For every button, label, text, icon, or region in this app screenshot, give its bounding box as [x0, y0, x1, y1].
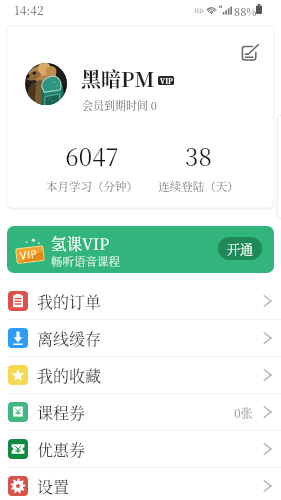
staticText: 14:42 — [14, 1, 44, 18]
button[interactable]: 优惠券 — [0, 431, 281, 467]
staticText: 连续登陆（天） — [158, 178, 239, 195]
button[interactable]: 开通 — [218, 237, 262, 260]
button[interactable]: Edit profile — [239, 43, 260, 64]
button[interactable]: 离线缓存 — [0, 320, 281, 356]
staticText: VIP — [160, 76, 173, 85]
button[interactable]: 设置 — [0, 468, 281, 500]
button[interactable]: 课程券 — [0, 394, 281, 430]
staticText: 开通 — [227, 239, 254, 258]
staticText: 本月学习（分钟） — [46, 178, 138, 195]
staticText: 88% — [234, 3, 257, 19]
staticText: 6047 — [65, 138, 119, 172]
staticText: 黑暗PM — [81, 64, 155, 93]
button[interactable]: 我的订单 — [0, 283, 281, 319]
staticText: 优惠券 — [37, 438, 86, 461]
staticText: 会员到期时间 0 — [82, 97, 157, 113]
staticText: 畅听语音课程 — [51, 253, 120, 270]
staticText: HD — [194, 6, 204, 15]
button[interactable]: Profile photo — [25, 63, 67, 105]
button[interactable]: 我的收藏 — [0, 357, 281, 393]
staticText: 38 — [185, 138, 212, 172]
staticText: 0张 — [234, 404, 253, 421]
staticText: 设置 — [37, 475, 70, 498]
staticText: 我的收藏 — [37, 364, 102, 387]
staticText: 氢课VIP — [51, 232, 110, 254]
button[interactable]: 氢课VIP — [7, 226, 274, 273]
staticText: 课程券 — [37, 401, 86, 424]
staticText: 离线缓存 — [37, 327, 102, 350]
staticText: 我的订单 — [37, 290, 102, 313]
